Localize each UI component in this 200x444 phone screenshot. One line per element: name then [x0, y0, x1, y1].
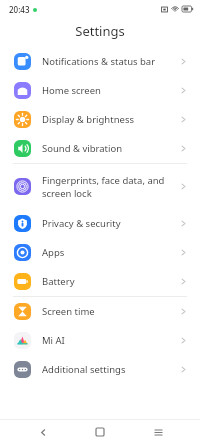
button[interactable]: Fingerprints, face data, and screen lock [0, 164, 200, 209]
button[interactable]: Home [85, 420, 115, 444]
button[interactable]: Display & brightness [0, 105, 200, 134]
button[interactable]: Back [28, 420, 58, 444]
staticText: Fingerprints, face data, and screen lock [42, 174, 179, 200]
button[interactable]: Apps [0, 238, 200, 267]
staticText: Privacy & security [42, 217, 179, 230]
button[interactable]: Screen time [0, 297, 200, 326]
button[interactable]: Home screen [0, 76, 200, 105]
staticText: Sound & vibration [42, 142, 179, 155]
staticText: Screen time [42, 305, 179, 318]
staticText: Additional settings [42, 363, 179, 376]
staticText: 20:43 [9, 4, 30, 15]
staticText: Settings [75, 22, 125, 40]
button[interactable]: Privacy & security [0, 209, 200, 238]
button[interactable]: Additional settings [0, 355, 200, 384]
staticText: Notifications & status bar [42, 55, 179, 68]
button[interactable]: Battery [0, 267, 200, 296]
button[interactable]: Sound & vibration [0, 134, 200, 163]
staticText: Apps [42, 246, 179, 259]
button[interactable]: Notifications & status bar [0, 47, 200, 76]
staticText: Battery [42, 275, 179, 288]
button[interactable]: Mi AI [0, 326, 200, 355]
staticText: Home screen [42, 84, 179, 97]
staticText: Display & brightness [42, 113, 179, 126]
button[interactable]: Recent apps [143, 420, 173, 444]
staticText: Mi AI [42, 334, 179, 347]
